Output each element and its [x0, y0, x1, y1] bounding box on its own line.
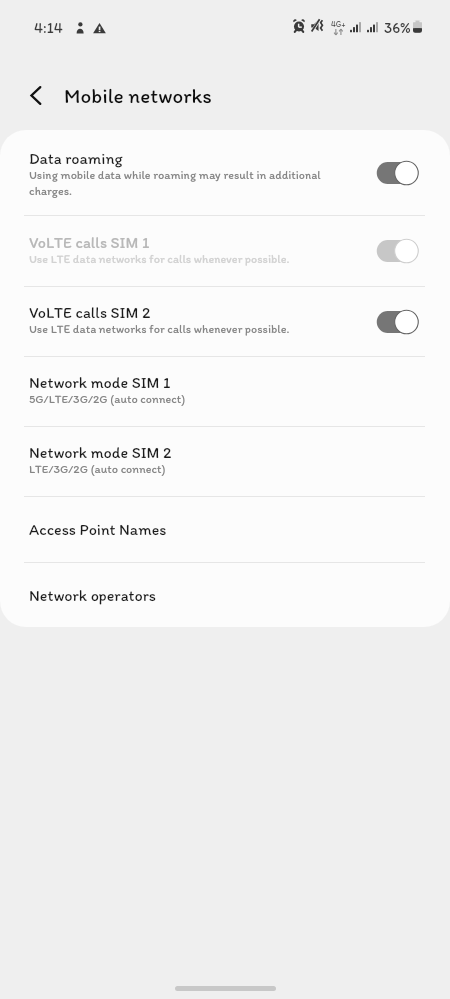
staticText: 4:14 — [34, 19, 63, 37]
staticText: Access Point Names — [29, 520, 167, 539]
button[interactable]: Navigate up — [20, 79, 52, 111]
staticText: VoLTE calls SIM 1 — [29, 233, 150, 252]
button[interactable]: Network mode SIM 1 — [0, 357, 450, 426]
button[interactable]: On — [374, 307, 421, 337]
staticText: 4G+ — [331, 19, 346, 29]
staticText: Use LTE data networks for calls whenever… — [29, 252, 290, 266]
staticText: 36% — [384, 19, 411, 37]
staticText: 5G/LTE/3G/2G (auto connect) — [29, 392, 186, 406]
button[interactable]: On — [374, 236, 421, 266]
staticText: Network mode SIM 1 — [29, 373, 171, 392]
button[interactable]: On — [374, 158, 421, 188]
staticText: VoLTE calls SIM 2 — [29, 303, 151, 322]
button[interactable]: Access Point Names — [0, 497, 450, 562]
button[interactable]: VoLTE calls SIM 1 — [0, 216, 450, 286]
button[interactable]: VoLTE calls SIM 2 — [0, 287, 450, 356]
staticText: Data roaming — [29, 149, 123, 168]
button[interactable]: Network mode SIM 2 — [0, 427, 450, 496]
staticText: Network mode SIM 2 — [29, 443, 172, 462]
staticText: Use LTE data networks for calls whenever… — [29, 322, 290, 336]
button[interactable]: Network operators — [0, 563, 450, 627]
staticText: LTE/3G/2G (auto connect) — [29, 462, 166, 476]
staticText: Using mobile data while roaming may resu… — [29, 168, 340, 198]
staticText: Network operators — [29, 586, 156, 605]
staticText: Mobile networks — [64, 83, 212, 108]
button[interactable]: Data roaming — [0, 130, 450, 215]
